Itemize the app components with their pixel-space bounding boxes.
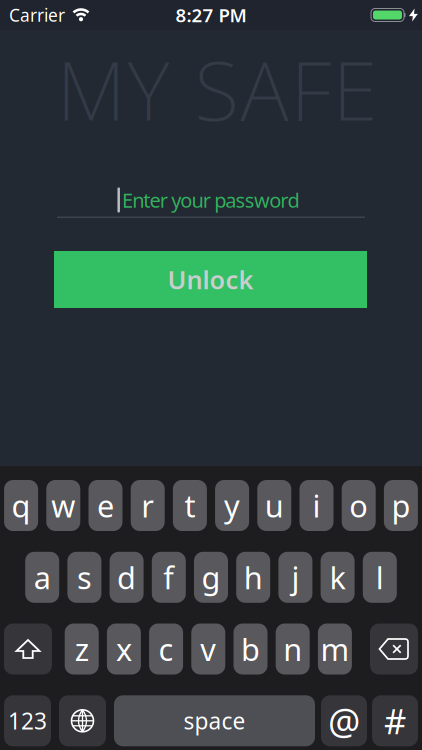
button[interactable]: w bbox=[46, 480, 80, 531]
staticText: 8:27 PM bbox=[175, 3, 246, 27]
button[interactable]: s bbox=[67, 552, 101, 603]
button[interactable]: j bbox=[278, 552, 312, 603]
button[interactable]: x bbox=[107, 623, 141, 674]
button[interactable]: Enter your password bbox=[57, 187, 365, 220]
staticText: 123 bbox=[8, 706, 47, 736]
button[interactable]: v bbox=[191, 623, 225, 674]
staticText: Unlock bbox=[167, 263, 253, 296]
staticText: e bbox=[97, 485, 114, 526]
staticText: j bbox=[291, 557, 299, 598]
button[interactable]: k bbox=[321, 552, 355, 603]
button[interactable]: y bbox=[215, 480, 249, 531]
button[interactable]: Delete bbox=[370, 623, 418, 674]
staticText: u bbox=[265, 485, 284, 526]
staticText: @ bbox=[328, 697, 360, 745]
button[interactable]: r bbox=[131, 480, 165, 531]
button[interactable]: g bbox=[194, 552, 228, 603]
button[interactable]: z bbox=[65, 623, 99, 674]
button[interactable]: q bbox=[4, 480, 38, 531]
button[interactable]: u bbox=[257, 480, 291, 531]
button[interactable]: f bbox=[152, 552, 186, 603]
button[interactable]: n bbox=[276, 623, 310, 674]
staticText: p bbox=[391, 485, 410, 526]
button[interactable]: Numbers bbox=[4, 695, 51, 746]
staticText: h bbox=[244, 557, 263, 598]
button[interactable]: p bbox=[384, 480, 418, 531]
staticText: a bbox=[34, 557, 51, 598]
staticText: q bbox=[12, 485, 31, 526]
staticText: b bbox=[241, 629, 260, 669]
staticText: y bbox=[224, 485, 240, 526]
staticText: w bbox=[51, 485, 75, 526]
staticText: # bbox=[384, 698, 406, 744]
staticText: g bbox=[201, 557, 220, 598]
staticText: k bbox=[330, 557, 346, 598]
button[interactable]: d bbox=[110, 552, 144, 603]
staticText: s bbox=[77, 557, 92, 598]
staticText: c bbox=[159, 629, 174, 669]
staticText: Carrier bbox=[9, 3, 65, 26]
button[interactable]: o bbox=[342, 480, 376, 531]
button[interactable]: b bbox=[233, 623, 267, 674]
button[interactable]: Shift bbox=[4, 623, 52, 674]
button[interactable]: c bbox=[149, 623, 183, 674]
staticText: m bbox=[320, 629, 349, 669]
button[interactable]: At sign bbox=[321, 695, 367, 746]
button[interactable]: a bbox=[25, 552, 59, 603]
staticText: l bbox=[376, 557, 384, 598]
staticText: MY SAFE bbox=[56, 35, 377, 143]
button[interactable]: i bbox=[299, 480, 333, 531]
button[interactable]: space bbox=[114, 695, 315, 746]
button[interactable]: Next keyboard bbox=[59, 695, 106, 746]
staticText: r bbox=[141, 485, 154, 526]
staticText: i bbox=[312, 485, 320, 526]
button[interactable]: h bbox=[236, 552, 270, 603]
staticText: z bbox=[75, 629, 89, 669]
staticText: v bbox=[200, 629, 216, 669]
button[interactable]: Unlock bbox=[54, 251, 367, 308]
button[interactable]: e bbox=[88, 480, 122, 531]
staticText: t bbox=[184, 485, 195, 526]
button[interactable]: m bbox=[318, 623, 352, 674]
button[interactable]: t bbox=[173, 480, 207, 531]
staticText: o bbox=[349, 485, 368, 526]
staticText: Enter your password bbox=[122, 187, 299, 213]
staticText: n bbox=[283, 629, 302, 669]
button[interactable]: l bbox=[363, 552, 397, 603]
staticText: space bbox=[183, 706, 245, 736]
staticText: f bbox=[163, 557, 174, 598]
staticText: x bbox=[116, 629, 132, 669]
staticText: d bbox=[117, 557, 136, 598]
button[interactable]: Hash bbox=[372, 695, 418, 746]
